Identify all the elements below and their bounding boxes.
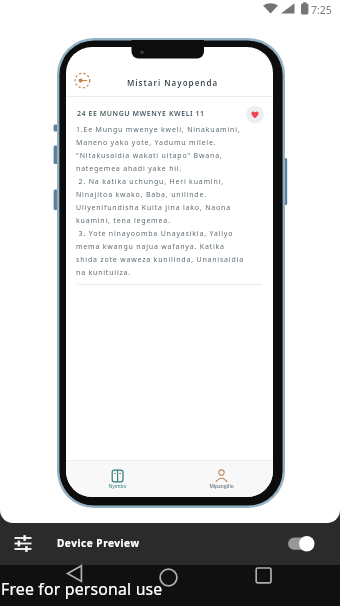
staticText: 2. Na katika uchungu, Heri kuamini, <box>76 177 266 187</box>
button[interactable] <box>60 560 90 590</box>
staticText: shida zote waweza kunilinda, Unanisaidia <box>76 255 266 265</box>
button[interactable] <box>283 531 317 557</box>
staticText: Nyimbo <box>87 483 148 490</box>
staticText: Ninajitoa kwako, Baba, unilinde. <box>76 190 266 200</box>
staticText: Uliyenifundisha Kuita jina lako, Naona <box>76 203 266 213</box>
staticText: Maneno yako yote, Yadumu milele. <box>76 138 266 148</box>
staticText: Device Preview <box>57 536 197 550</box>
button[interactable] <box>74 71 94 91</box>
button[interactable] <box>248 560 278 590</box>
button[interactable] <box>90 462 146 495</box>
staticText: na kunituliza. <box>76 268 266 278</box>
staticText: Free for personal use <box>1 578 221 600</box>
staticText: "Nitakusaidia wakati uitapo" Bwana, <box>76 151 266 161</box>
staticText: kuamini, tena legemea. <box>76 216 266 226</box>
button[interactable] <box>194 462 250 495</box>
staticText: nategemea ahadi yake hii. <box>76 164 266 174</box>
staticText: 1.Ee Mungu mwenye kweli, Ninakuamini, <box>76 125 266 135</box>
staticText: Mipangilio <box>191 483 252 490</box>
staticText: 7:25 <box>311 3 340 17</box>
button[interactable] <box>8 528 40 558</box>
staticText: Mistari Nayopenda <box>69 77 276 88</box>
button[interactable] <box>154 560 184 590</box>
staticText: 3. Yote ninayoomba Unayasikia, Yaliyo <box>76 229 266 239</box>
staticText: 24 EE MUNGU MWENYE KWELI 11 <box>77 109 247 119</box>
button[interactable] <box>245 104 265 125</box>
staticText: mema kwangu najua wafanya. Katika <box>76 242 266 252</box>
